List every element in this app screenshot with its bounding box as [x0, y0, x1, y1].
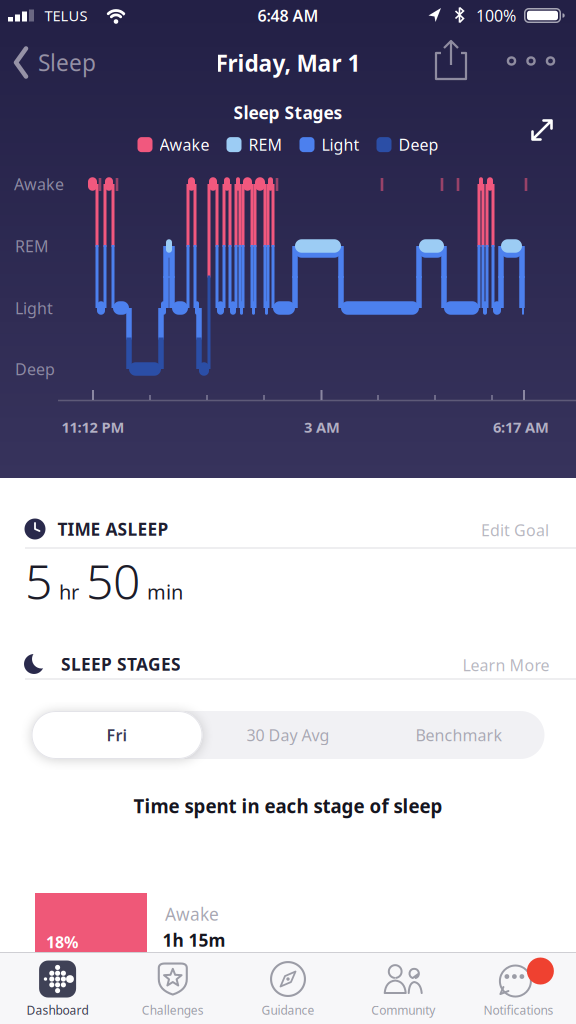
button[interactable]: Benchmark	[373, 711, 544, 759]
staticText: Light	[15, 297, 53, 319]
staticText: Community	[371, 1002, 435, 1018]
staticText: 18%	[46, 931, 78, 953]
staticText: Sleep Stages	[233, 101, 342, 124]
staticText: 3 AM	[304, 417, 340, 437]
staticText: min	[147, 579, 183, 605]
staticText: Light	[321, 134, 359, 155]
staticText: Learn More	[462, 654, 549, 676]
button[interactable]: Dashboard	[0, 952, 115, 1024]
staticText: Deep	[398, 134, 438, 155]
staticText: 11:12 PM	[61, 417, 124, 437]
button[interactable]: Guidance	[230, 952, 346, 1024]
staticText: hr	[59, 579, 79, 605]
staticText: 6:17 AM	[493, 417, 549, 437]
staticText: 100%	[476, 5, 516, 26]
staticText: Guidance	[261, 1002, 314, 1018]
staticText: REM	[15, 235, 49, 257]
staticText: Fri	[106, 724, 127, 746]
staticText: Friday, Mar 1	[215, 48, 360, 78]
button[interactable]: 30 Day Avg	[202, 711, 373, 759]
staticText: Awake	[14, 173, 64, 195]
staticText: Deep	[15, 358, 55, 380]
staticText: Edit Goal	[481, 519, 549, 541]
button[interactable]: Notifications	[461, 952, 576, 1024]
button[interactable]: Challenges	[115, 952, 230, 1024]
button[interactable]: Edit Goal	[481, 519, 549, 541]
staticText: 6:48 AM	[257, 5, 318, 26]
button[interactable]	[530, 118, 553, 141]
staticText: Awake	[165, 902, 219, 925]
staticText: SLEEP STAGES	[61, 652, 181, 675]
staticText: Time spent in each stage of sleep	[133, 794, 442, 818]
staticText: Challenges	[142, 1002, 204, 1018]
staticText: 30 Day Avg	[246, 724, 329, 746]
button[interactable]	[435, 39, 467, 81]
button[interactable]: Fri	[31, 711, 202, 759]
staticText: 5	[25, 549, 52, 613]
staticText: TELUS	[44, 6, 87, 25]
button[interactable]: Learn More	[462, 654, 549, 676]
staticText: 1h 15m	[162, 928, 225, 951]
staticText: REM	[248, 134, 282, 155]
staticText: Sleep	[38, 47, 96, 77]
button[interactable]	[507, 56, 555, 66]
button[interactable]: Sleep	[14, 46, 96, 78]
staticText: 50	[86, 549, 140, 613]
button[interactable]: Community	[346, 952, 461, 1024]
staticText: Dashboard	[27, 1002, 89, 1018]
staticText: TIME ASLEEP	[57, 517, 168, 540]
staticText: Awake	[159, 134, 209, 155]
staticText: Benchmark	[415, 724, 502, 746]
staticText: Notifications	[483, 1002, 553, 1018]
